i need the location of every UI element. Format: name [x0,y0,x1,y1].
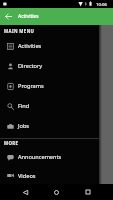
staticText: Activities [18,42,42,50]
staticText: Programs [18,82,44,90]
button[interactable]: Jobs [0,116,99,136]
staticText: Announcements [18,153,62,161]
button[interactable]: Activities [0,36,99,56]
button[interactable]: Home [45,184,68,200]
button[interactable]: Directory [0,56,99,76]
button[interactable]: Programs [0,76,99,96]
button[interactable]: Announcements [0,147,99,167]
staticText: Directory [18,62,43,70]
button[interactable]: Find [0,96,99,116]
staticText: Videos [18,172,36,180]
staticText: Jobs [18,122,30,130]
button[interactable]: Back [0,8,17,25]
staticText: Find [18,102,30,110]
button[interactable]: Back [14,184,37,200]
staticText: MORE [4,140,19,146]
button[interactable]: Videos [0,167,99,184]
button[interactable]: Recents [76,184,99,200]
staticText: MAIN MENU [4,28,35,34]
staticText: Activities [18,13,39,20]
staticText: 10:06 [96,1,107,7]
